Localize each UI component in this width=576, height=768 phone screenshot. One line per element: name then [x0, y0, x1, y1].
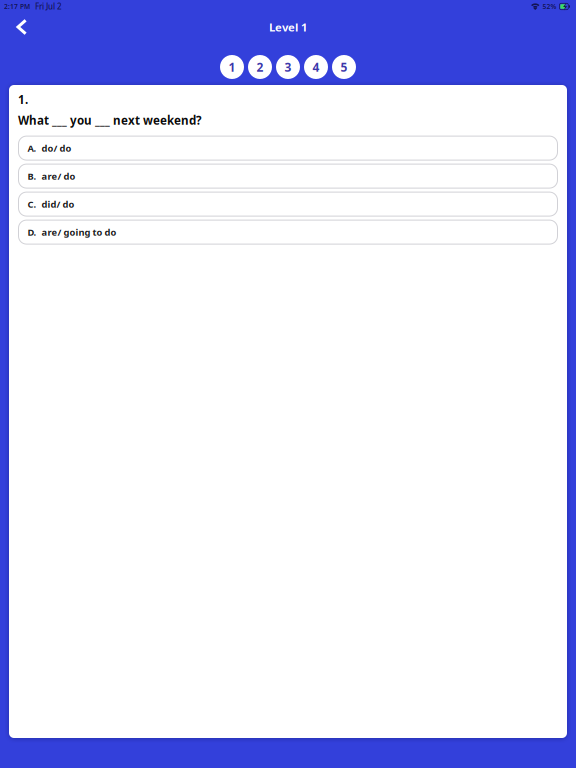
staticText: B. — [27, 170, 36, 182]
staticText: are/ do — [41, 170, 75, 182]
button[interactable]: 4 — [304, 55, 328, 79]
staticText: 2:17 PM — [4, 2, 30, 11]
button[interactable]: 5 — [332, 55, 356, 79]
button[interactable]: 1 — [220, 55, 244, 79]
button[interactable]: A. — [18, 136, 557, 160]
staticText: A. — [27, 142, 36, 154]
button[interactable]: 3 — [276, 55, 300, 79]
staticText: 1 — [228, 59, 235, 75]
staticText: D. — [27, 226, 36, 238]
button[interactable]: Back — [0, 12, 44, 42]
button[interactable]: C. — [18, 192, 557, 216]
staticText: did/ do — [41, 198, 74, 210]
staticText: C. — [27, 198, 36, 210]
staticText: 52% — [542, 2, 556, 11]
staticText: Fri Jul 2 — [35, 1, 62, 12]
staticText: 2 — [256, 59, 263, 75]
button[interactable]: 2 — [248, 55, 272, 79]
staticText: What ___ you ___ next weekend? — [18, 112, 202, 128]
staticText: are/ going to do — [41, 226, 116, 238]
staticText: 4 — [312, 59, 319, 75]
button[interactable]: B. — [18, 164, 557, 188]
staticText: do/ do — [41, 142, 71, 154]
staticText: 1. — [18, 91, 28, 107]
staticText: 5 — [340, 59, 347, 75]
staticText: Level 1 — [269, 19, 307, 35]
staticText: 3 — [284, 59, 291, 75]
button[interactable]: D. — [18, 220, 557, 244]
